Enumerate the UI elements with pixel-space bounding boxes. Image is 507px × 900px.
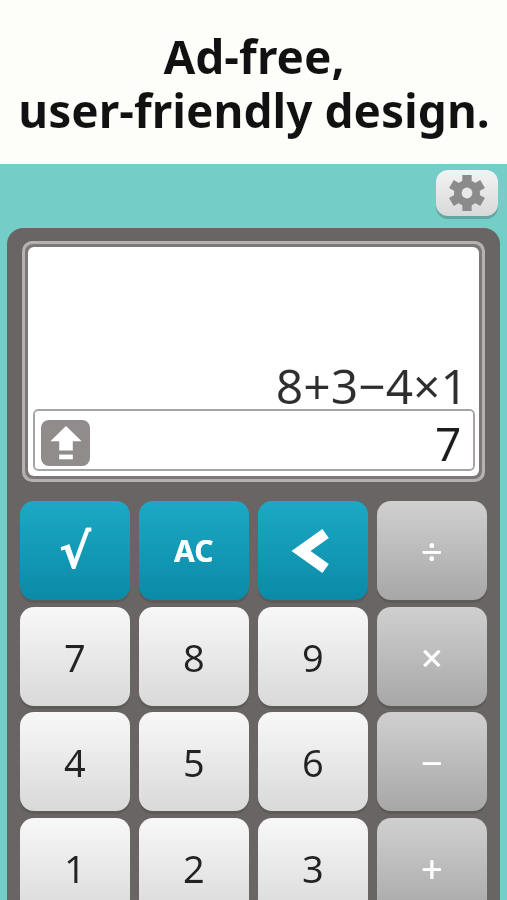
button[interactable]: AC bbox=[139, 501, 249, 600]
staticText: 7 bbox=[64, 631, 86, 683]
button[interactable]: 9 bbox=[258, 607, 368, 706]
staticText: √ bbox=[59, 523, 92, 579]
button[interactable]: 2 bbox=[139, 818, 249, 900]
button[interactable]: − bbox=[377, 712, 487, 811]
staticText: 3 bbox=[302, 842, 324, 894]
button[interactable]: 8 bbox=[139, 607, 249, 706]
button[interactable]: 3 bbox=[258, 818, 368, 900]
staticText: AC bbox=[174, 530, 214, 571]
staticText: 2 bbox=[183, 842, 205, 894]
staticText: + bbox=[421, 842, 443, 894]
staticText: × bbox=[421, 631, 443, 683]
staticText: 7 bbox=[435, 412, 462, 468]
button[interactable]: 1 bbox=[20, 818, 130, 900]
staticText: 6 bbox=[302, 736, 324, 788]
button[interactable] bbox=[41, 420, 90, 466]
button[interactable]: 7 bbox=[20, 607, 130, 706]
staticText: 8+3−4×1 bbox=[275, 353, 468, 407]
button[interactable]: 6 bbox=[258, 712, 368, 811]
staticText: 1 bbox=[64, 842, 86, 894]
button[interactable]: × bbox=[377, 607, 487, 706]
button[interactable]: 5 bbox=[139, 712, 249, 811]
staticText: Ad-free, user-friendly design. bbox=[18, 25, 490, 141]
button[interactable]: 4 bbox=[20, 712, 130, 811]
staticText: 8 bbox=[183, 631, 205, 683]
button[interactable] bbox=[436, 170, 498, 216]
staticText: 4 bbox=[64, 736, 86, 788]
staticText: − bbox=[421, 736, 443, 788]
button[interactable]: + bbox=[377, 818, 487, 900]
button[interactable]: ÷ bbox=[377, 501, 487, 600]
button[interactable]: √ bbox=[20, 501, 130, 600]
staticText: 5 bbox=[183, 736, 205, 788]
button[interactable] bbox=[258, 501, 368, 600]
staticText: 9 bbox=[302, 631, 324, 683]
staticText: ÷ bbox=[421, 525, 443, 577]
